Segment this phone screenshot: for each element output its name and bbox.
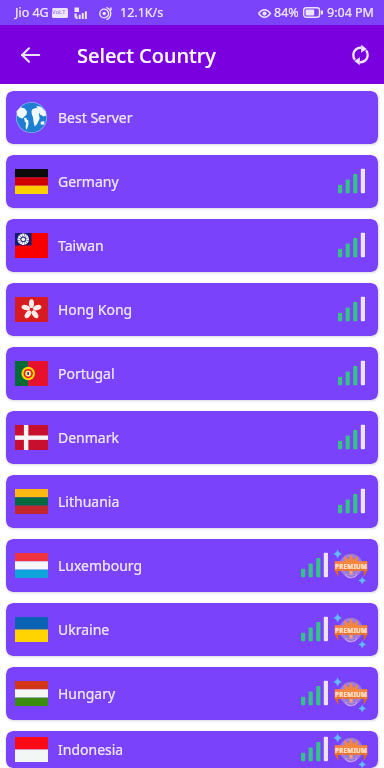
button[interactable]: Ukraine bbox=[6, 603, 378, 656]
staticText: Portugal bbox=[58, 364, 115, 383]
staticText: Jio 4G bbox=[15, 4, 49, 21]
staticText: Select Country bbox=[77, 42, 216, 69]
button[interactable]: Portugal bbox=[6, 347, 378, 400]
button[interactable]: Germany bbox=[6, 155, 378, 208]
staticText: Luxembourg bbox=[58, 556, 143, 575]
button[interactable]: Lithuania bbox=[6, 475, 378, 528]
button[interactable]: Hong Kong bbox=[6, 283, 378, 336]
staticText: Taiwan bbox=[58, 236, 104, 255]
staticText: Denmark bbox=[58, 428, 119, 447]
button[interactable]: Denmark bbox=[6, 411, 378, 464]
staticText: VoLTE bbox=[52, 8, 68, 18]
staticText: PREMIUM bbox=[335, 626, 368, 634]
staticText: Hong Kong bbox=[58, 300, 133, 319]
staticText: Indonesia bbox=[58, 740, 124, 759]
staticText: Germany bbox=[58, 172, 119, 191]
staticText: Ukraine bbox=[58, 620, 110, 639]
button[interactable]: Taiwan bbox=[6, 219, 378, 272]
button[interactable]: Hungary bbox=[6, 667, 378, 720]
staticText: Hungary bbox=[58, 684, 116, 703]
staticText: Best Server bbox=[58, 108, 133, 127]
staticText: PREMIUM bbox=[335, 690, 368, 698]
button[interactable]: Back bbox=[9, 34, 51, 76]
staticText: 12.1K/s bbox=[120, 4, 164, 21]
button[interactable]: Luxembourg bbox=[6, 539, 378, 592]
button[interactable]: Refresh bbox=[339, 34, 381, 76]
button[interactable]: Indonesia bbox=[6, 731, 378, 768]
button[interactable]: Best Server bbox=[6, 91, 378, 144]
staticText: 9:04 PM bbox=[327, 4, 374, 21]
staticText: Lithuania bbox=[58, 492, 120, 511]
staticText: PREMIUM bbox=[335, 562, 368, 570]
staticText: 84% bbox=[274, 4, 299, 21]
staticText: PREMIUM bbox=[335, 746, 368, 754]
